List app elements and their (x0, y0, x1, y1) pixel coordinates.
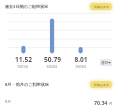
staticText: 円 (108, 101, 113, 106)
staticText: 詳細を見る (94, 83, 109, 87)
staticText: 9月2日 (46, 64, 58, 69)
staticText: 9月3日 (75, 64, 87, 69)
button[interactable]: 期間を選択 (100, 59, 112, 66)
button[interactable]: 詳細を見る (90, 3, 112, 10)
staticText: 11.52 (15, 55, 32, 64)
staticText: 8月 (5, 99, 12, 104)
staticText: 9月1日 (17, 64, 29, 69)
staticText: 週間 (101, 61, 108, 65)
staticText: 詳細を見る (94, 5, 109, 9)
staticText: 8月・前月のご利用状況 (5, 82, 49, 88)
staticText: 50.79 (44, 55, 61, 64)
staticText: 過去3日間のご利用状況 (5, 4, 48, 10)
staticText: 8.01 (74, 55, 88, 64)
button[interactable]: 詳細を見る (90, 81, 112, 88)
staticText: 70.34 (94, 99, 108, 106)
